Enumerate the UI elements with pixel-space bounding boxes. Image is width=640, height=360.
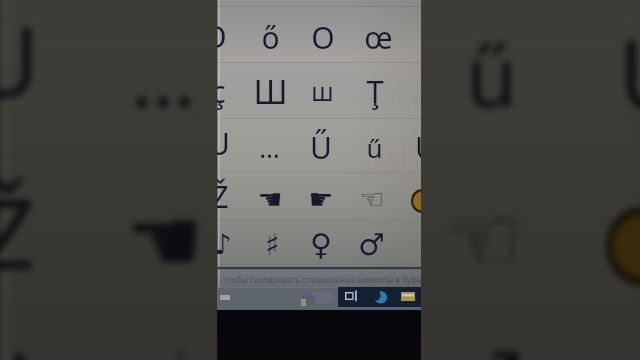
staticText: ♀ xyxy=(310,227,332,262)
staticText: Ţ xyxy=(366,70,384,112)
staticText: Ш xyxy=(253,69,288,114)
staticText: ☛ xyxy=(308,183,334,216)
staticText: Ų xyxy=(415,127,421,168)
staticText: ♯ xyxy=(265,227,280,262)
staticText: ш xyxy=(311,74,334,108)
staticText: Ű xyxy=(310,127,332,168)
staticText: чтобы скопировать специальные символы в … xyxy=(223,274,421,285)
staticText: Ű xyxy=(290,6,359,139)
staticText: ♪ xyxy=(217,228,232,261)
staticText: ☛ xyxy=(284,188,365,295)
staticText: ☚ xyxy=(257,183,283,216)
staticText: Ž xyxy=(217,176,229,217)
staticText: ç xyxy=(217,71,226,112)
staticText: … xyxy=(259,130,280,165)
staticText: Ọ xyxy=(217,16,227,57)
staticText: ♂ xyxy=(440,331,525,360)
staticText: Ų xyxy=(618,6,640,139)
staticText: ☚ xyxy=(124,188,205,295)
staticText: ♪ xyxy=(0,334,46,360)
staticText: ♂ xyxy=(358,227,385,262)
staticText: U xyxy=(217,123,230,164)
staticText: ű xyxy=(465,15,518,129)
staticText: ☜ xyxy=(443,188,525,295)
staticText: ☜ xyxy=(359,183,385,216)
staticText: Ž xyxy=(0,165,36,298)
staticText: U xyxy=(0,0,39,126)
staticText: ő xyxy=(261,17,280,58)
staticText: … xyxy=(130,15,196,129)
staticText: œ xyxy=(364,17,393,58)
staticText: ű xyxy=(366,130,383,165)
button[interactable]: Video xyxy=(217,0,421,360)
staticText: O xyxy=(311,17,335,58)
